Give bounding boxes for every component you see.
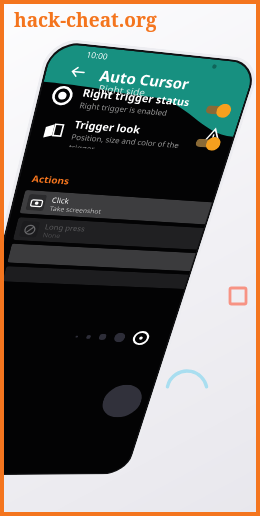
staticText: Right trigger is enabled [78, 99, 169, 118]
staticText: Click [51, 194, 71, 205]
staticText: Auto Cursor [97, 65, 192, 93]
staticText: 10:00 [85, 48, 110, 62]
staticText: Actions [31, 172, 72, 187]
staticText: None [42, 231, 61, 241]
button[interactable]: Long press [13, 217, 204, 250]
staticText: Long press [44, 221, 87, 233]
staticText: Trigger look [73, 117, 143, 136]
button[interactable]: Trigger look [28, 113, 235, 159]
button[interactable]: Right trigger status [37, 78, 246, 127]
button[interactable]: Back [64, 60, 92, 84]
staticText: Right side [97, 81, 147, 99]
staticText: Take screenshot [48, 204, 102, 216]
button[interactable]: Click [19, 190, 212, 224]
staticText: Position, size and color of the trigger [69, 131, 193, 156]
staticText: Right trigger status [81, 85, 192, 109]
staticText: hack-cheat.org [14, 7, 157, 33]
